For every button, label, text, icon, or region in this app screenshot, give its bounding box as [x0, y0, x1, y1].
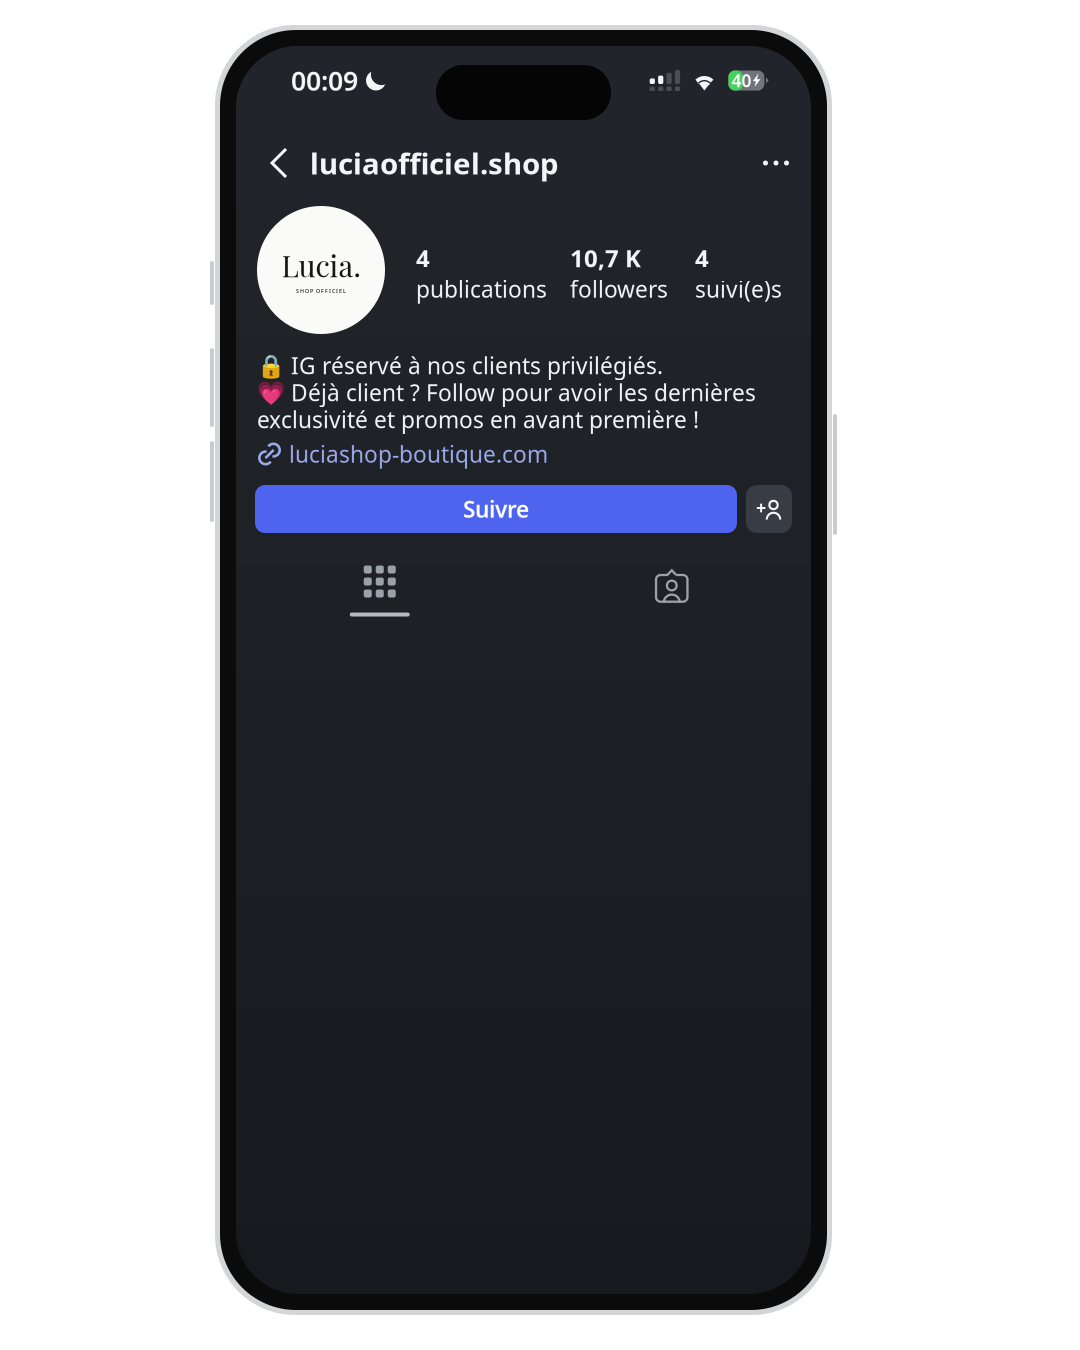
button[interactable]: More options: [754, 138, 798, 188]
staticText: luciashop-boutique.com: [289, 439, 548, 469]
staticText: suivi(e)s: [695, 274, 782, 304]
staticText: 💗 Déjà client ? Follow pour avoir les de…: [257, 377, 756, 407]
staticText: Suivre: [463, 494, 529, 524]
staticText: Lucia.: [281, 245, 360, 284]
button[interactable]: Posts: [236, 556, 523, 622]
staticText: followers: [570, 274, 668, 304]
staticText: luciaofficiel.shop: [310, 143, 559, 182]
staticText: 4: [416, 242, 430, 274]
button[interactable]: luciashop-boutique.com: [236, 433, 811, 475]
staticText: S H O P O F F I C I E L: [296, 287, 346, 295]
staticText: exclusivité et promos en avant première …: [257, 404, 699, 434]
staticText: 4: [695, 242, 709, 274]
button[interactable]: Back: [254, 138, 304, 188]
button[interactable]: Suivre: [255, 485, 737, 533]
staticText: 40: [731, 69, 751, 92]
button[interactable]: Add person: [746, 485, 792, 533]
button[interactable]: Tagged: [523, 556, 811, 622]
staticText: publications: [416, 274, 547, 304]
staticText: 10,7 K: [570, 242, 641, 274]
staticText: 00:09: [291, 63, 358, 98]
staticText: 🔒 IG réservé à nos clients privilégiés.: [257, 350, 663, 380]
